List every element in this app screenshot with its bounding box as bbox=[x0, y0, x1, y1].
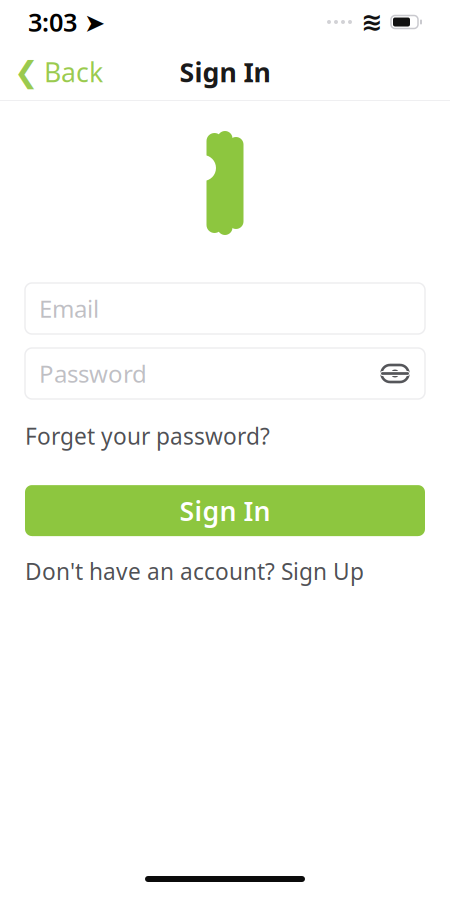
staticText: ≋ bbox=[361, 8, 382, 36]
staticText: Forget your password? bbox=[25, 421, 270, 451]
staticText: Sign In bbox=[179, 493, 270, 528]
staticText: Back bbox=[44, 54, 103, 90]
staticText: ❮ bbox=[14, 55, 39, 89]
button[interactable]: Email bbox=[25, 283, 425, 334]
button[interactable]: Show password bbox=[379, 360, 411, 386]
button[interactable]: Don't have an account? Sign Up bbox=[25, 552, 364, 590]
button[interactable]: Sign In bbox=[25, 485, 425, 536]
staticText: 3:03 ➤ bbox=[28, 5, 105, 39]
button[interactable]: ❮ bbox=[0, 48, 117, 96]
staticText: Password bbox=[39, 358, 147, 389]
staticText: Email bbox=[39, 293, 99, 324]
button[interactable]: Forget your password? bbox=[25, 417, 270, 455]
staticText: Don't have an account? Sign Up bbox=[25, 556, 364, 586]
staticText: Sign In bbox=[179, 54, 270, 90]
button[interactable]: Password bbox=[25, 348, 425, 399]
